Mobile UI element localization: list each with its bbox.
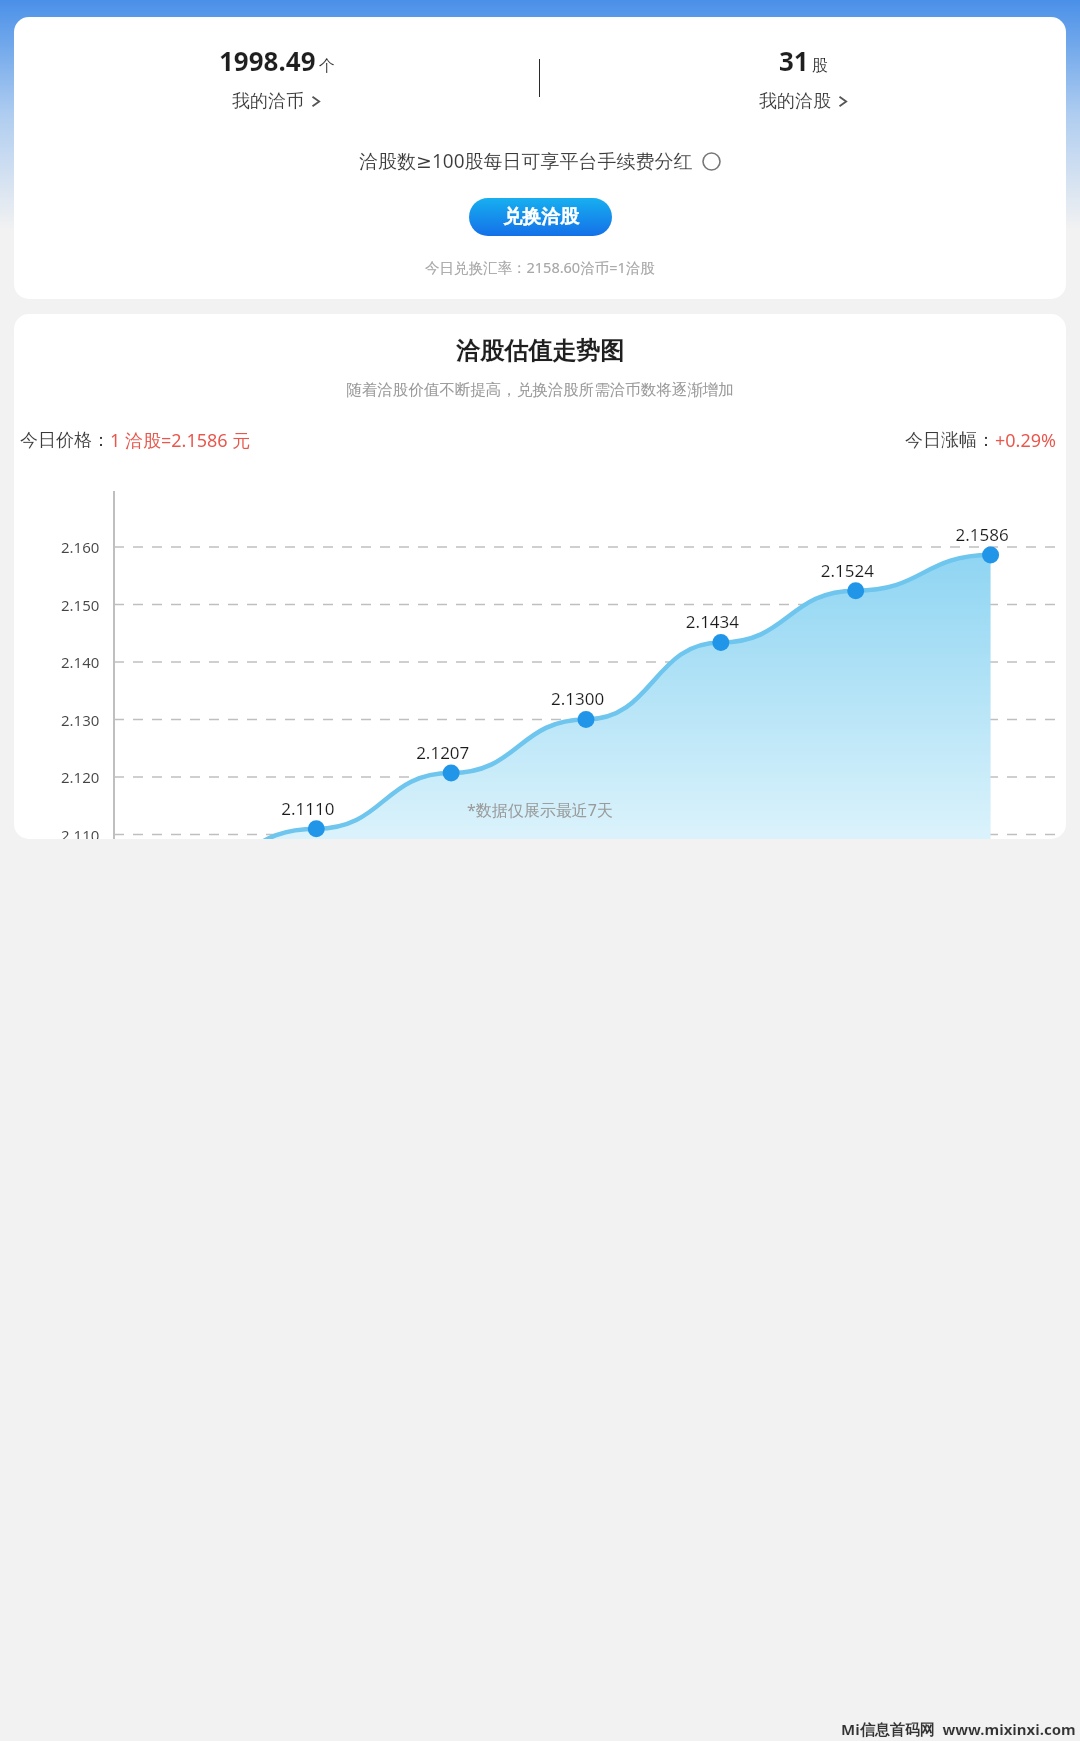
staticText: 1 洽股=2.1586 元 — [110, 428, 251, 453]
staticText: *数据仅展示最近7天 — [467, 799, 613, 821]
staticText: 今日价格： — [20, 429, 110, 452]
staticText: 1998.49 — [219, 43, 316, 78]
staticText: 今日兑换汇率：2158.60洽币=1洽股 — [425, 257, 655, 277]
staticText: 洽股数≥100股每日可享平台手续费分红 — [359, 148, 693, 174]
staticText: +0.29% — [995, 428, 1056, 453]
button[interactable]: 洽股数≥100股每日可享平台手续费分红 — [353, 146, 727, 176]
button[interactable]: 兑换洽股 — [469, 198, 612, 236]
button[interactable]: 1998.49 — [14, 43, 539, 113]
staticText: 我的洽币 — [232, 90, 304, 113]
staticText: 随着洽股价值不断提高，兑换洽股所需洽币数将逐渐增加 — [346, 380, 734, 400]
staticText: 今日涨幅： — [905, 429, 995, 452]
staticText: 我的洽股 — [759, 90, 831, 113]
button[interactable]: 31 — [540, 43, 1066, 113]
staticText: Mi信息首码网 www.mixinxi.com — [841, 1719, 1076, 1739]
staticText: 个 — [319, 56, 335, 76]
staticText: 股 — [812, 56, 828, 76]
staticText: 兑换洽股 — [503, 205, 579, 229]
staticText: 31 — [779, 43, 809, 78]
staticText: 洽股估值走势图 — [456, 336, 624, 366]
